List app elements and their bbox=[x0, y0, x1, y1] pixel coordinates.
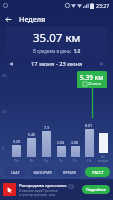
button[interactable]: 7.3 bbox=[40, 72, 53, 164]
staticText: 3.08 bbox=[71, 140, 79, 145]
button[interactable]: Вс bbox=[97, 72, 109, 164]
staticText: 3.29 bbox=[13, 139, 21, 144]
button[interactable]: ВРЕМЯ bbox=[57, 167, 82, 177]
staticText: ШАГ bbox=[11, 170, 20, 175]
staticText: Ср bbox=[44, 158, 49, 163]
staticText: Распродажа кроссовок bbox=[19, 183, 67, 189]
button[interactable]: Подробнее bbox=[82, 185, 110, 194]
staticText: Чт bbox=[59, 158, 63, 163]
staticText: В среднем в день: bbox=[33, 48, 72, 54]
button[interactable]: 8.01 bbox=[83, 72, 95, 164]
staticText: Вс bbox=[101, 154, 105, 159]
staticText: 22 июня bbox=[88, 82, 101, 86]
button[interactable]: КАЛОРИЯ bbox=[30, 167, 54, 177]
staticText: 23:27 bbox=[96, 2, 110, 9]
staticText: Уникальное акция! При оплате bbox=[19, 189, 59, 193]
staticText: сегодня bbox=[98, 159, 108, 163]
staticText: 20 bbox=[2, 73, 7, 78]
button[interactable]: 3.08 bbox=[69, 72, 81, 164]
staticText: РАССТ bbox=[92, 170, 104, 175]
button[interactable]: ШАГ bbox=[3, 167, 27, 177]
staticText: 5.46 bbox=[28, 132, 36, 137]
staticText: КАЛОРИЯ bbox=[33, 170, 52, 175]
staticText: 5.39 км bbox=[80, 73, 104, 82]
button[interactable]: Previous week bbox=[6, 59, 16, 69]
staticText: 10 bbox=[2, 109, 7, 114]
staticText: 3.04 bbox=[57, 140, 65, 145]
staticText: 5.0 bbox=[74, 48, 81, 54]
button[interactable]: 3.29 bbox=[10, 72, 23, 164]
staticText: 7.3 bbox=[44, 125, 50, 130]
button[interactable]: 5.39 км bbox=[77, 71, 107, 88]
button[interactable]: 3.04 bbox=[55, 72, 67, 164]
staticText: ВРЕМЯ bbox=[63, 170, 76, 175]
staticText: Сб bbox=[87, 158, 92, 163]
staticText: Вт bbox=[30, 158, 34, 163]
staticText: от трех пар кроссовок - цена… bbox=[19, 193, 58, 197]
staticText: Неделя bbox=[19, 14, 46, 24]
button[interactable]: РАССТ bbox=[85, 167, 110, 177]
staticText: Подробнее bbox=[86, 187, 106, 192]
staticText: 35.07 км bbox=[33, 30, 81, 46]
button[interactable]: Распродажа кроссовок bbox=[0, 179, 113, 200]
staticText: Пт bbox=[73, 158, 78, 163]
staticText: Пн bbox=[14, 158, 19, 163]
button[interactable]: Back bbox=[0, 11, 16, 27]
button[interactable]: 5.46 bbox=[25, 72, 38, 164]
button[interactable]: 35.07 км bbox=[6, 27, 107, 58]
staticText: 8.01 bbox=[85, 123, 93, 128]
staticText: 17 июня - 23 июня bbox=[31, 60, 83, 68]
button[interactable]: Next week bbox=[97, 59, 107, 69]
staticText: 0 bbox=[2, 146, 5, 151]
